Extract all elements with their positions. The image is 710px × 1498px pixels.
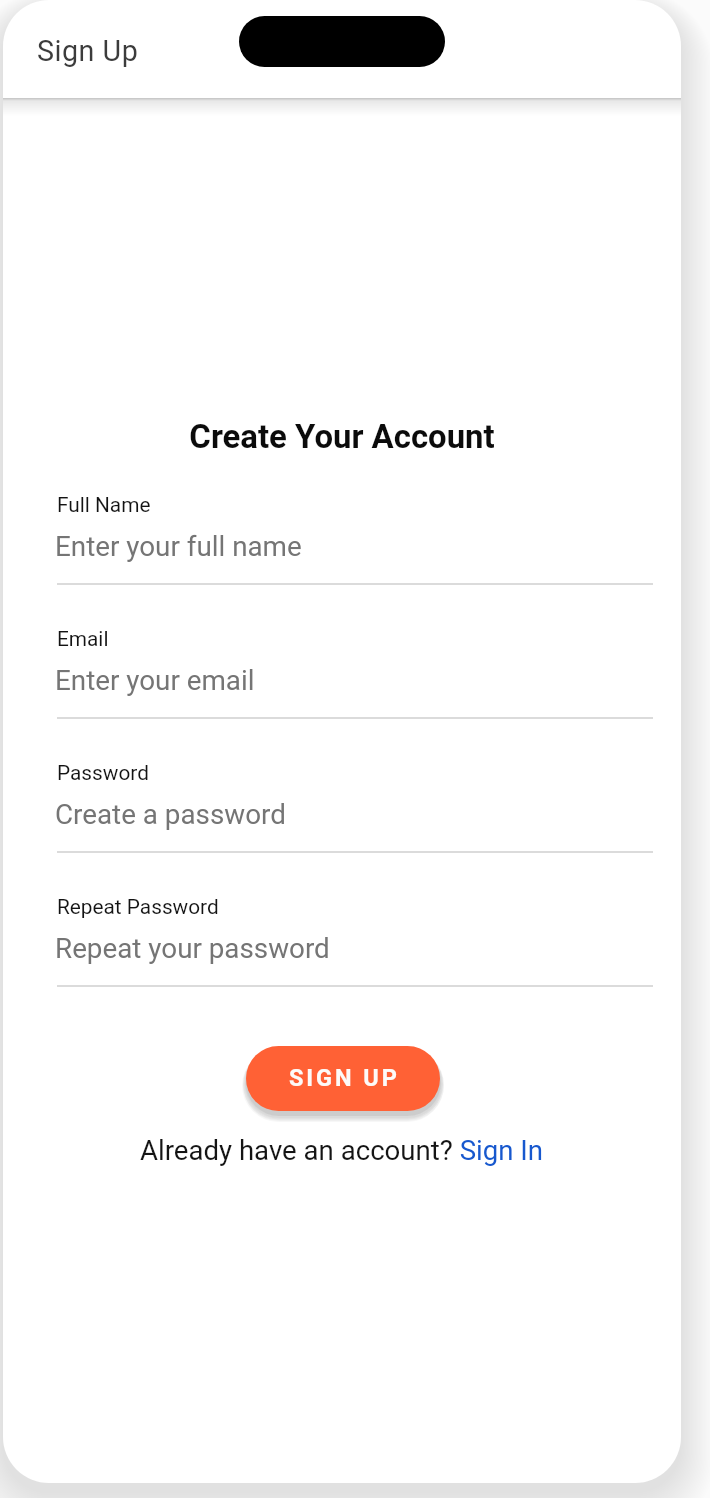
staticText: SIGN UP [289, 1064, 400, 1092]
button[interactable]: SIGN UP [246, 1046, 440, 1111]
staticText: Create a password [55, 798, 286, 831]
staticText: Enter your full name [55, 530, 302, 563]
staticText: Repeat Password [57, 895, 219, 919]
staticText: Enter your email [55, 664, 255, 697]
staticText: Email [57, 627, 109, 651]
staticText: Repeat your password [55, 932, 330, 965]
button[interactable]: Already have an account? Sign In [140, 1134, 544, 1166]
staticText: Full Name [57, 493, 151, 517]
staticText: Sign Up [37, 34, 139, 68]
staticText: Create Your Account [3, 417, 681, 456]
staticText: Password [57, 761, 149, 785]
button[interactable]: Sign Up [3, 0, 681, 98]
